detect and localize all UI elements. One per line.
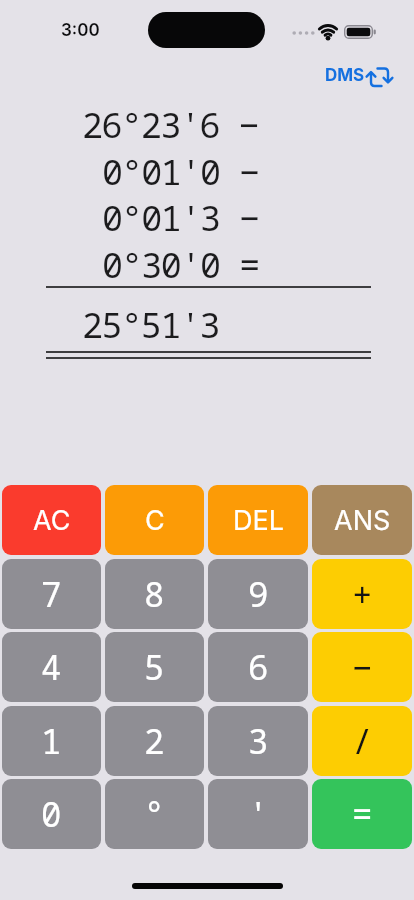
staticText: / xyxy=(352,718,373,764)
staticText: 25°51'3 xyxy=(82,301,220,338)
staticText: DEL xyxy=(233,504,284,537)
button[interactable]: 0 xyxy=(2,779,101,849)
button[interactable]: ° xyxy=(105,779,204,849)
staticText: 3 xyxy=(248,718,269,764)
button[interactable]: 3 xyxy=(208,706,308,776)
button[interactable]: ANS xyxy=(312,485,412,555)
staticText: 5 xyxy=(144,644,165,690)
staticText: ' xyxy=(248,791,269,837)
staticText: 26°23'6 − xyxy=(82,101,259,138)
button[interactable]: 4 xyxy=(2,632,101,702)
button[interactable]: DMS xyxy=(318,60,398,90)
staticText: ANS xyxy=(334,504,391,537)
staticText: 0°01'3 − xyxy=(102,194,259,231)
button[interactable]: 6 xyxy=(208,632,308,702)
staticText: 6 xyxy=(248,644,269,690)
button[interactable]: + xyxy=(312,559,412,629)
button[interactable]: = xyxy=(312,779,412,849)
button[interactable]: 8 xyxy=(105,559,204,629)
staticText: = xyxy=(352,791,373,837)
button[interactable]: AC xyxy=(2,485,101,555)
button[interactable]: 2 xyxy=(105,706,204,776)
button[interactable]: − xyxy=(312,632,412,702)
staticText: 1 xyxy=(41,718,62,764)
button[interactable]: 7 xyxy=(2,559,101,629)
staticText: 0 xyxy=(41,791,62,837)
staticText: AC xyxy=(33,504,71,537)
button[interactable]: ' xyxy=(208,779,308,849)
staticText: 3:00 xyxy=(61,20,100,41)
staticText: C xyxy=(145,504,165,537)
button[interactable]: / xyxy=(312,706,412,776)
staticText: 2 xyxy=(144,718,165,764)
staticText: DMS xyxy=(325,65,365,86)
staticText: 7 xyxy=(41,571,62,617)
button[interactable]: DEL xyxy=(208,485,308,555)
staticText: 8 xyxy=(144,571,165,617)
staticText: 0°30'0 = xyxy=(102,241,259,278)
staticText: − xyxy=(352,644,373,690)
staticText: 9 xyxy=(248,571,269,617)
staticText: 0°01'0 − xyxy=(102,148,259,185)
staticText: ° xyxy=(144,791,165,837)
button[interactable]: 5 xyxy=(105,632,204,702)
button[interactable]: 1 xyxy=(2,706,101,776)
staticText: + xyxy=(352,571,373,617)
button[interactable]: C xyxy=(105,485,204,555)
button[interactable]: 9 xyxy=(208,559,308,629)
staticText: 4 xyxy=(41,644,62,690)
